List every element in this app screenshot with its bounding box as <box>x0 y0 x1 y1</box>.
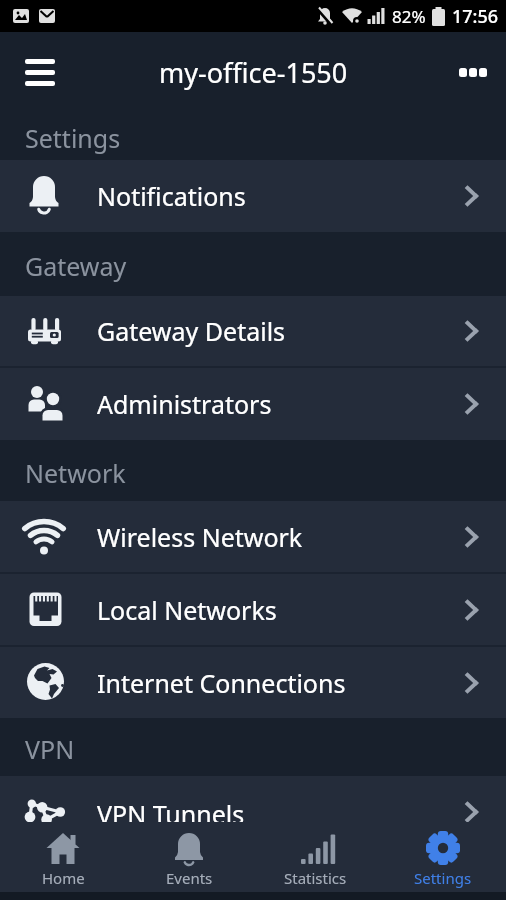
staticText: 17:56 <box>452 4 499 29</box>
button[interactable]: Wireless Network <box>0 501 506 572</box>
staticText: Gateway <box>25 249 127 283</box>
staticText: VPN Tunnels <box>97 797 245 822</box>
staticText: 82% <box>392 5 426 28</box>
button[interactable]: Notifications <box>0 160 506 232</box>
button[interactable] <box>453 52 493 92</box>
button[interactable]: Events <box>126 822 252 892</box>
staticText: Internet Connections <box>97 666 346 700</box>
button[interactable]: Home <box>0 822 126 892</box>
staticText: Notifications <box>97 179 246 213</box>
button[interactable]: VPN Tunnels <box>0 776 506 822</box>
staticText: Statistics <box>284 868 347 888</box>
staticText: Wireless Network <box>97 520 303 554</box>
button[interactable]: Statistics <box>252 822 379 892</box>
staticText: Settings <box>25 121 121 155</box>
staticText: Events <box>166 868 213 888</box>
staticText: Administrators <box>97 387 272 421</box>
staticText: my-office-1550 <box>159 54 348 91</box>
staticText: Gateway Details <box>97 314 286 348</box>
button[interactable]: Local Networks <box>0 574 506 645</box>
staticText: Home <box>42 868 85 888</box>
button[interactable] <box>15 47 65 97</box>
button[interactable]: Administrators <box>0 368 506 440</box>
staticText: VPN <box>25 732 75 766</box>
button[interactable]: Settings <box>379 822 506 892</box>
staticText: Settings <box>414 868 472 888</box>
staticText: Network <box>25 456 126 490</box>
button[interactable]: Gateway Details <box>0 296 506 366</box>
button[interactable]: Internet Connections <box>0 647 506 718</box>
staticText: Local Networks <box>97 593 277 627</box>
